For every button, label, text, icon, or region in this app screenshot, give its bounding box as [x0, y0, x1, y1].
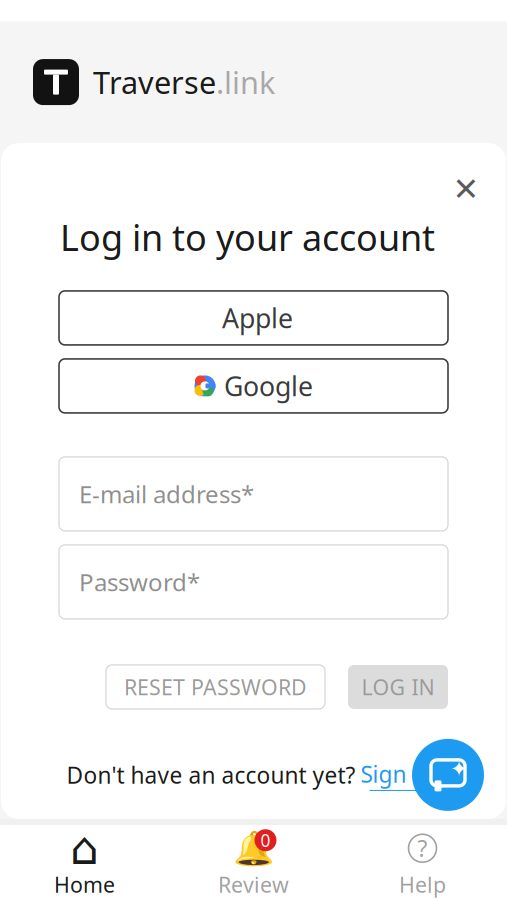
staticText: RESET PASSWORD: [124, 673, 307, 701]
button[interactable]: LOG IN: [348, 665, 448, 709]
staticText: Don't have an account yet?: [66, 760, 355, 790]
button[interactable]: ⌂: [0, 825, 169, 900]
staticText: Password*: [79, 566, 200, 598]
staticText: Google: [224, 368, 313, 404]
button[interactable]: RESET PASSWORD: [106, 665, 325, 709]
button[interactable]: Google: [59, 359, 448, 413]
staticText: ✦: [450, 757, 468, 781]
button[interactable]: Close: [444, 167, 488, 211]
staticText: Log in to your account: [60, 213, 435, 261]
staticText: LOG IN: [361, 673, 434, 701]
button[interactable]: [59, 291, 448, 345]
staticText: Traverse: [93, 62, 216, 102]
staticText: ✕: [452, 171, 479, 207]
staticText: 🔔: [232, 829, 274, 867]
staticText: ?: [417, 833, 427, 863]
button[interactable]: Sign up: [360, 759, 440, 791]
staticText: ⌂: [70, 822, 99, 874]
staticText: Sign up: [360, 759, 440, 789]
button[interactable]: 🔔: [169, 825, 338, 900]
staticText: .link: [216, 62, 275, 102]
staticText: 0: [260, 829, 270, 852]
button[interactable]: Chat assistant: [412, 739, 484, 811]
staticText: Apple: [222, 300, 293, 336]
staticText: E-mail address*: [79, 478, 254, 510]
staticText: Help: [399, 870, 446, 898]
button[interactable]: ?: [338, 825, 507, 900]
staticText: Home: [54, 870, 115, 898]
staticText: Review: [218, 870, 289, 898]
